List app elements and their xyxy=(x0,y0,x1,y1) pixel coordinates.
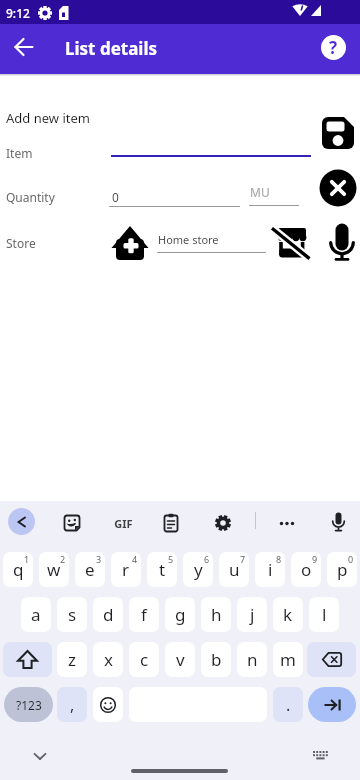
staticText: k xyxy=(283,603,293,626)
button[interactable] xyxy=(273,227,310,260)
button[interactable]: c xyxy=(129,642,159,677)
staticText: r xyxy=(122,558,130,581)
button[interactable] xyxy=(319,114,357,152)
staticText: g xyxy=(175,603,186,626)
button[interactable] xyxy=(308,687,356,722)
button[interactable] xyxy=(276,513,298,533)
staticText: 2 xyxy=(60,553,66,565)
button[interactable] xyxy=(308,746,332,766)
button[interactable]: r xyxy=(111,552,141,587)
staticText: 6 xyxy=(204,553,210,565)
staticText: 9:12 xyxy=(6,5,30,21)
button[interactable] xyxy=(62,513,82,533)
button[interactable]: n xyxy=(237,642,267,677)
staticText: ? xyxy=(329,36,338,59)
staticText: w xyxy=(47,558,61,581)
button[interactable] xyxy=(318,168,357,207)
staticText: Home store xyxy=(158,232,219,247)
button[interactable]: a xyxy=(21,597,51,632)
staticText: 3 xyxy=(96,553,102,565)
staticText: . xyxy=(286,694,291,716)
button[interactable]: ? xyxy=(321,35,346,60)
staticText: 0 xyxy=(112,189,119,205)
staticText: e xyxy=(85,558,95,581)
button[interactable] xyxy=(162,513,180,533)
button[interactable]: x xyxy=(93,642,123,677)
button[interactable]: p xyxy=(327,552,357,587)
staticText: Quantity xyxy=(6,189,55,205)
button[interactable]: GIF xyxy=(0,501,30,519)
staticText: List details xyxy=(65,37,158,60)
staticText: z xyxy=(68,648,76,671)
button[interactable]: v xyxy=(165,642,195,677)
button[interactable]: . xyxy=(273,687,303,722)
staticText: ?123 xyxy=(16,697,42,713)
staticText: h xyxy=(211,603,222,626)
button[interactable] xyxy=(28,746,52,766)
staticText: m xyxy=(280,648,296,671)
staticText: j xyxy=(250,603,255,626)
staticText: 5 xyxy=(168,553,174,565)
staticText: a xyxy=(31,603,41,626)
staticText: q xyxy=(13,558,24,581)
staticText: i xyxy=(268,558,273,581)
staticText: MU xyxy=(250,184,270,200)
button[interactable] xyxy=(3,642,52,677)
button[interactable]: d xyxy=(93,597,123,632)
staticText: v xyxy=(176,648,185,671)
button[interactable] xyxy=(4,27,44,67)
button[interactable] xyxy=(307,642,356,677)
button[interactable]: w xyxy=(39,552,69,587)
button[interactable]: z xyxy=(57,642,87,677)
button[interactable]: l xyxy=(309,597,339,632)
button[interactable] xyxy=(330,512,347,532)
staticText: x xyxy=(104,648,113,671)
staticText: 4 xyxy=(132,553,138,565)
button[interactable] xyxy=(8,508,35,535)
button[interactable]: b xyxy=(201,642,231,677)
staticText: s xyxy=(68,603,77,626)
staticText: Add new item xyxy=(6,109,90,127)
button[interactable]: o xyxy=(291,552,321,587)
staticText: u xyxy=(229,558,240,581)
button[interactable]: , xyxy=(57,687,87,722)
button[interactable]: u xyxy=(219,552,249,587)
button[interactable]: q xyxy=(3,552,33,587)
button[interactable] xyxy=(214,514,232,532)
button[interactable]: ?123 xyxy=(4,687,53,722)
staticText: Item xyxy=(6,145,33,161)
button[interactable] xyxy=(93,687,123,722)
staticText: GIF xyxy=(114,516,133,531)
button[interactable]: g xyxy=(165,597,195,632)
button[interactable]: h xyxy=(201,597,231,632)
staticText: p xyxy=(337,558,348,581)
staticText: 8 xyxy=(276,553,282,565)
staticText: l xyxy=(322,603,327,626)
button[interactable]: e xyxy=(75,552,105,587)
button[interactable]: y xyxy=(183,552,213,587)
staticText: Store xyxy=(6,235,36,251)
staticText: f xyxy=(141,603,147,626)
staticText: 1 xyxy=(24,553,30,565)
staticText: c xyxy=(140,648,149,671)
button[interactable] xyxy=(327,221,356,263)
staticText: , xyxy=(70,694,75,716)
button[interactable]: i xyxy=(255,552,285,587)
staticText: 0 xyxy=(348,553,354,565)
button[interactable]: m xyxy=(273,642,303,677)
staticText: b xyxy=(211,648,222,671)
staticText: y xyxy=(194,558,203,581)
staticText: o xyxy=(301,558,312,581)
button[interactable] xyxy=(110,224,150,262)
staticText: 9 xyxy=(312,553,318,565)
button[interactable]: t xyxy=(147,552,177,587)
button[interactable]: f xyxy=(129,597,159,632)
button[interactable]: k xyxy=(273,597,303,632)
staticText: t xyxy=(159,558,166,581)
staticText: n xyxy=(247,648,258,671)
staticText: d xyxy=(103,603,114,626)
staticText: 7 xyxy=(240,553,246,565)
button[interactable]: j xyxy=(237,597,267,632)
button[interactable]: s xyxy=(57,597,87,632)
